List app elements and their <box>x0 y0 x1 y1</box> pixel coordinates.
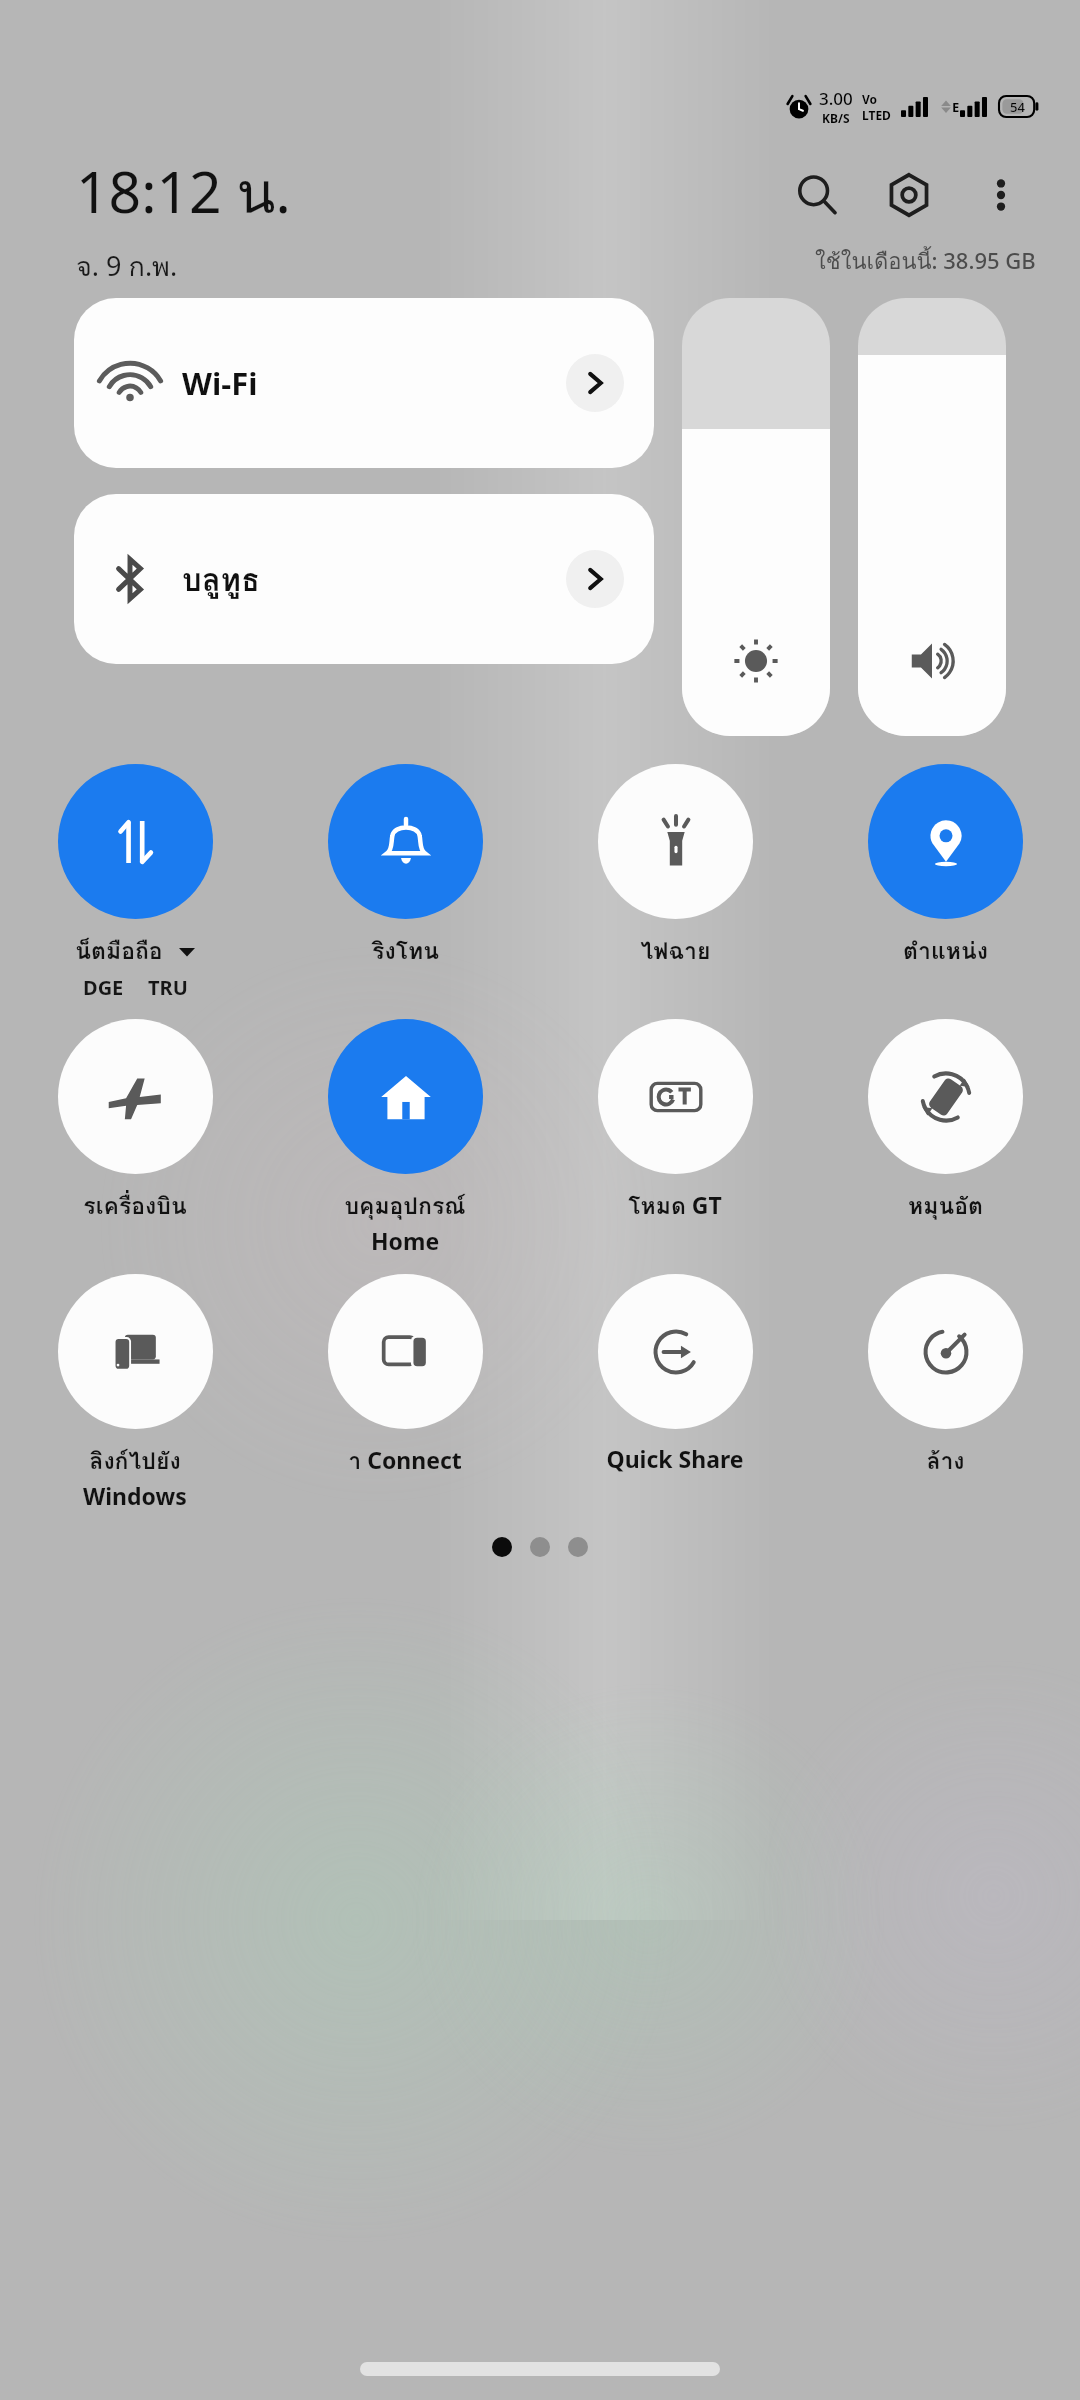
staticText: า Connect <box>348 1443 462 1480</box>
staticText: ไฟฉาย <box>640 933 711 970</box>
staticText: Vo <box>862 91 878 107</box>
button[interactable]: Search <box>782 160 852 230</box>
button[interactable]: ไฟฉาย <box>540 764 810 970</box>
staticText: 3.00 <box>819 87 853 110</box>
button[interactable]: ล้าง <box>810 1274 1080 1480</box>
button[interactable]: น็ตมือถือ <box>0 764 270 1001</box>
staticText: LTED <box>862 107 891 123</box>
staticText: Windows <box>83 1480 187 1511</box>
staticText: E <box>952 98 960 116</box>
staticText: ริงโทน <box>372 933 439 970</box>
staticText: โหมด GT <box>628 1188 722 1225</box>
staticText: Wi-Fi <box>182 362 258 404</box>
staticText: Quick Share <box>606 1443 744 1474</box>
button[interactable]: ลิงก์ไปยัง <box>0 1274 270 1511</box>
staticText: KB/S <box>822 110 850 126</box>
button[interactable]: โหมด GT <box>540 1019 810 1225</box>
staticText: ลิงก์ไปยัง <box>89 1443 181 1480</box>
button[interactable]: Volume <box>858 298 1006 736</box>
staticText: ตำแหน่ง <box>903 933 988 970</box>
button[interactable]: Settings <box>874 160 944 230</box>
staticText: TRU <box>148 974 188 1001</box>
staticText: 54 <box>1010 98 1025 116</box>
button[interactable] <box>0 1537 1080 1557</box>
staticText: ล้าง <box>926 1443 965 1480</box>
button[interactable]: บลูทูธ <box>74 494 654 664</box>
button[interactable]: More options <box>966 160 1036 230</box>
staticText: DGE <box>83 974 124 1001</box>
button[interactable]: หมุนอัต <box>810 1019 1080 1225</box>
button[interactable]: ตำแหน่ง <box>810 764 1080 970</box>
staticText: บลูทูธ <box>182 555 260 604</box>
staticText: น็ตมือถือ <box>75 933 163 970</box>
staticText: จ. 9 ก.พ. <box>76 245 178 288</box>
button[interactable]: Brightness <box>682 298 830 736</box>
staticText: บคุมอุปกรณ์ <box>344 1188 466 1225</box>
button[interactable]: รเครื่องบิน <box>0 1019 270 1225</box>
staticText: 18:12 น. <box>76 148 291 239</box>
button[interactable]: า Connect <box>270 1274 540 1480</box>
staticText: รเครื่องบิน <box>83 1188 187 1225</box>
button[interactable]: ริงโทน <box>270 764 540 970</box>
staticText: หมุนอัต <box>908 1188 983 1225</box>
button[interactable]: บคุมอุปกรณ์ <box>270 1019 540 1256</box>
staticText: Home <box>371 1225 440 1256</box>
button[interactable]: Quick Share <box>540 1274 810 1474</box>
button[interactable]: Wi-Fi <box>74 298 654 468</box>
staticText: ใช้ในเดือนนี้: 38.95 GB <box>815 244 1036 279</box>
